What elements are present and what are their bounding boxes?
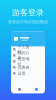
button[interactable]: 优惠券 [11,64,45,70]
button[interactable]: 我的订单 [11,52,45,58]
staticText: 优惠券 [18,65,30,70]
button[interactable]: 首页 [11,85,28,93]
staticText: 游客登录 [12,8,44,17]
staticText: 设置 [18,71,26,76]
button[interactable]: 我的 [28,85,45,93]
staticText: 我的订单 [18,50,30,60]
button[interactable]: 个人资料 [11,46,45,52]
staticText: 个人资料 [18,44,30,54]
button[interactable]: 收货地址 [11,58,45,64]
staticText: 登录后可同步您的数据 [8,19,48,24]
button[interactable]: 设置 [11,70,45,76]
staticText: 收货地址 [18,56,30,66]
